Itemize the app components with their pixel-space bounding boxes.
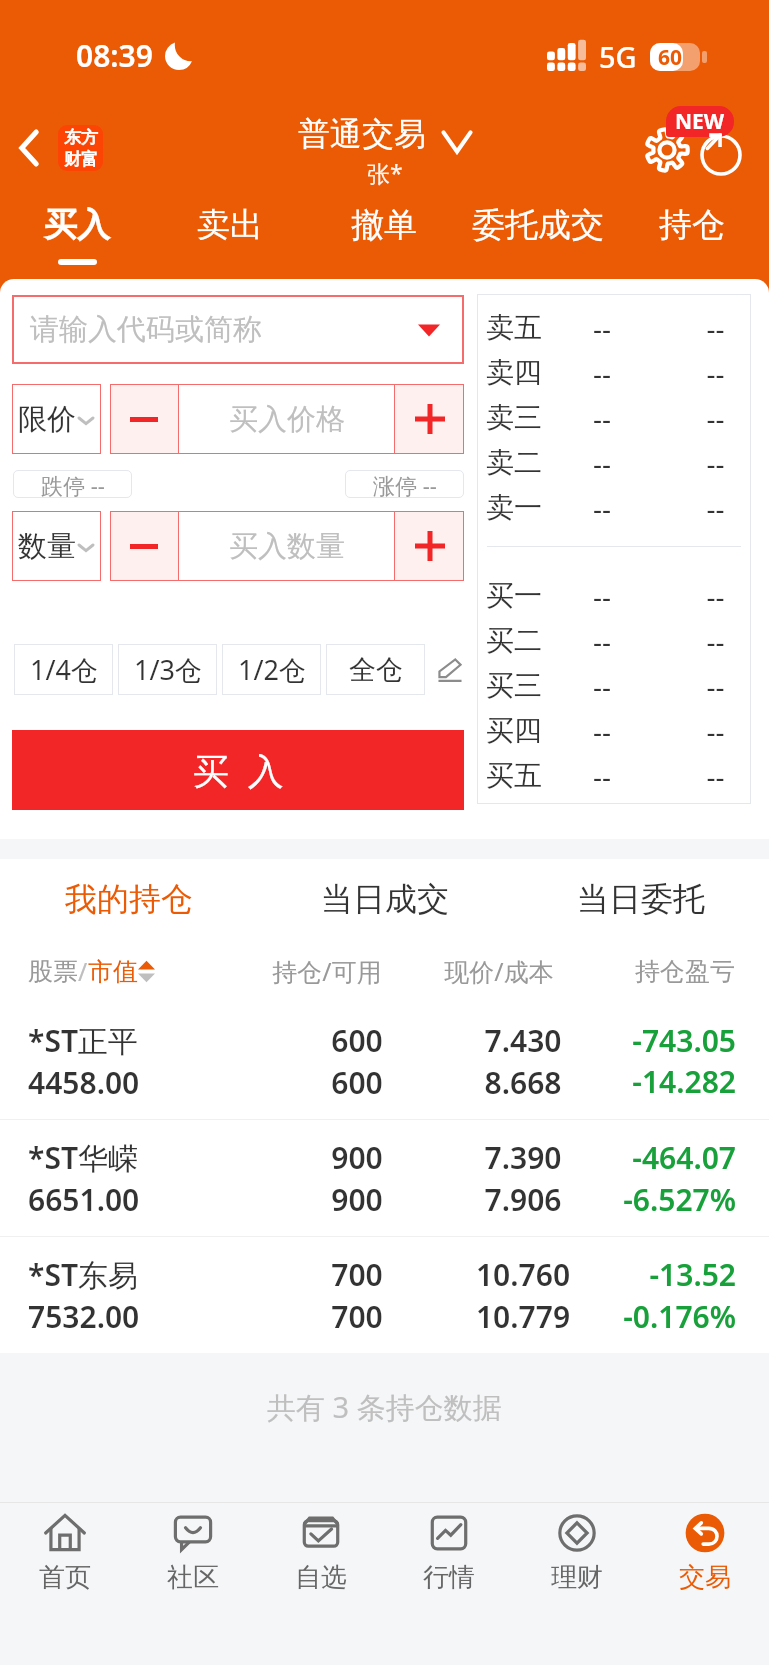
staticText: --	[691, 309, 740, 347]
staticText: 持仓	[659, 204, 725, 246]
button[interactable]: 买二	[477, 618, 751, 663]
staticText: 卖二	[486, 445, 572, 480]
staticText: 买入	[44, 204, 110, 246]
button[interactable]: 买三	[477, 663, 751, 708]
button[interactable]: 请输入代码或简称	[12, 295, 464, 364]
button[interactable]: 买 入	[12, 730, 464, 810]
staticText: 6651.00	[28, 1179, 265, 1220]
staticText: --	[691, 577, 740, 615]
staticText: 600	[273, 1062, 441, 1103]
staticText: 买五	[486, 758, 572, 793]
button[interactable]: Back	[12, 123, 107, 173]
staticText: --	[691, 354, 740, 392]
staticText: --	[572, 712, 632, 750]
staticText: 涨停 --	[373, 470, 437, 498]
button[interactable]: 理财	[513, 1503, 641, 1665]
button[interactable]: 卖二	[477, 440, 751, 485]
staticText: 请输入代码或简称	[30, 311, 262, 348]
button[interactable]: Exit	[693, 122, 749, 178]
staticText: 4458.00	[28, 1062, 265, 1103]
staticText: 我的持仓	[65, 879, 193, 919]
staticText: --	[572, 354, 632, 392]
button[interactable]: 买一	[477, 573, 751, 618]
staticText: 卖出	[197, 204, 263, 246]
button[interactable]: Decrease	[110, 511, 178, 581]
staticText: 买二	[486, 623, 572, 658]
button[interactable]: 卖一	[477, 485, 751, 530]
staticText: *ST正平	[28, 1020, 265, 1061]
staticText: -743.05	[613, 1020, 736, 1061]
staticText: 700	[273, 1296, 441, 1337]
button[interactable]: 卖三	[477, 395, 751, 440]
button[interactable]: 买入数量	[178, 511, 395, 581]
staticText: -13.52	[613, 1254, 736, 1295]
staticText: --	[691, 622, 740, 660]
button[interactable]: 卖出	[153, 192, 307, 279]
button[interactable]: 卖四	[477, 350, 751, 395]
staticText: 东方	[64, 127, 98, 148]
button[interactable]: 当日成交	[257, 859, 513, 939]
staticText: -0.176%	[613, 1296, 736, 1337]
button[interactable]: 卖五	[477, 305, 751, 350]
button[interactable]: *ST华嵘	[0, 1120, 769, 1236]
button[interactable]: 我的持仓	[0, 859, 257, 939]
staticText: 900	[273, 1137, 441, 1178]
button[interactable]: 买五	[477, 753, 751, 798]
staticText: 张*	[367, 157, 403, 188]
staticText: 08:39	[76, 35, 153, 76]
button[interactable]: 股票	[28, 954, 281, 988]
staticText: 买入数量	[229, 528, 345, 565]
staticText: 普通交易	[298, 114, 426, 154]
button[interactable]: Increase	[395, 511, 464, 581]
button[interactable]: 买入价格	[178, 384, 395, 454]
button[interactable]: Settings	[641, 124, 693, 176]
button[interactable]: 数量	[12, 511, 101, 581]
button[interactable]: *ST东易	[0, 1237, 769, 1353]
button[interactable]: 当日委托	[513, 859, 769, 939]
staticText: --	[572, 489, 632, 527]
staticText: 行情	[423, 1561, 475, 1594]
button[interactable]: 跌停 --	[13, 470, 132, 498]
staticText: 数量	[18, 528, 76, 565]
staticText: 卖三	[486, 400, 572, 435]
staticText: 1/4仓	[30, 651, 98, 688]
button[interactable]: Edit	[438, 658, 462, 682]
button[interactable]: 全仓	[326, 644, 425, 695]
button[interactable]: 社区	[129, 1503, 257, 1665]
button[interactable]: 1/3仓	[118, 644, 217, 695]
button[interactable]: 买四	[477, 708, 751, 753]
button[interactable]: 持仓	[615, 192, 769, 279]
staticText: 社区	[167, 1561, 219, 1594]
button[interactable]: Increase	[395, 384, 464, 454]
staticText: *ST华嵘	[28, 1137, 265, 1178]
staticText: 10.760	[433, 1254, 613, 1295]
staticText: -6.527%	[613, 1179, 736, 1220]
button[interactable]: 行情	[385, 1503, 513, 1665]
button[interactable]: 委托成交	[461, 192, 615, 279]
button[interactable]: 限价	[12, 384, 101, 454]
staticText: 1/3仓	[134, 651, 202, 688]
button[interactable]: 交易	[641, 1503, 769, 1665]
staticText: 7.906	[433, 1179, 613, 1220]
button[interactable]: *ST正平	[0, 1003, 769, 1119]
button[interactable]: 1/4仓	[14, 644, 113, 695]
staticText: *ST东易	[28, 1254, 265, 1295]
button[interactable]: 涨停 --	[345, 470, 464, 498]
staticText: 买 入	[193, 746, 284, 795]
staticText: 共有 3 条持仓数据	[267, 1387, 502, 1427]
staticText: --	[691, 757, 740, 795]
staticText: 自选	[295, 1561, 347, 1594]
button[interactable]: 首页	[0, 1503, 129, 1665]
button[interactable]: Decrease	[110, 384, 178, 454]
staticText: 8.668	[433, 1062, 613, 1103]
staticText: --	[691, 489, 740, 527]
button[interactable]: 自选	[257, 1503, 385, 1665]
staticText: 60	[658, 43, 683, 71]
button[interactable]: 普通交易	[298, 114, 472, 154]
staticText: 理财	[551, 1561, 603, 1594]
staticText: 全仓	[349, 653, 403, 687]
button[interactable]: 撤单	[307, 192, 461, 279]
button[interactable]: 买入	[0, 192, 153, 279]
staticText: 持仓盈亏	[613, 956, 735, 987]
button[interactable]: 1/2仓	[222, 644, 321, 695]
